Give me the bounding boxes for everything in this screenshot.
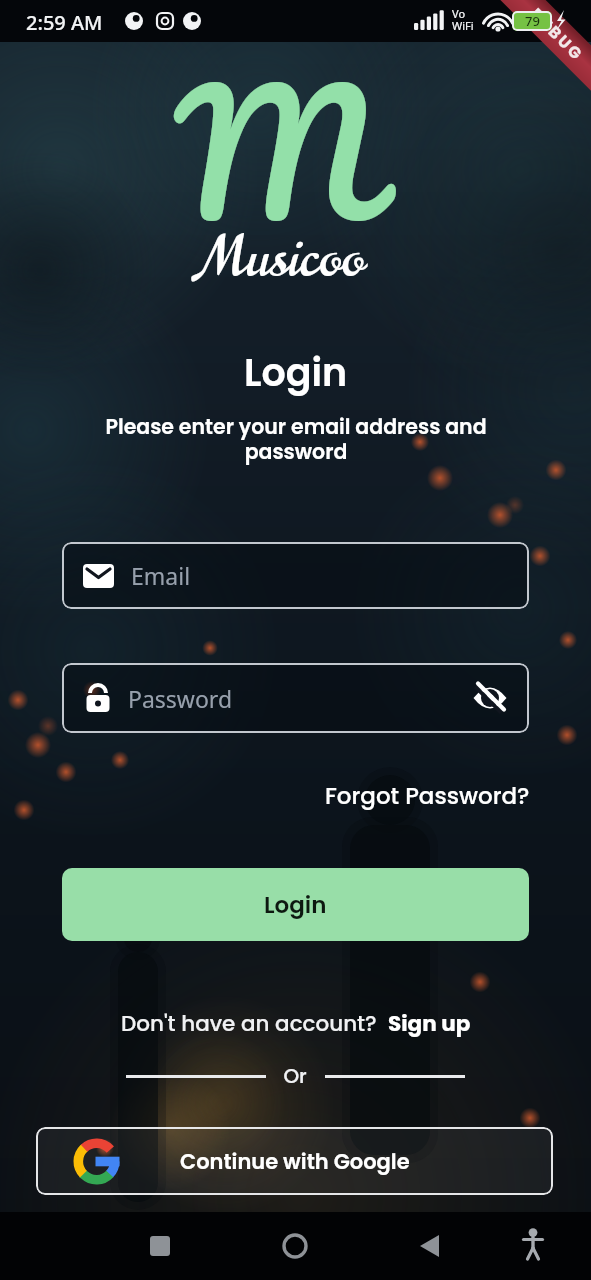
staticText: Or [273,1062,318,1090]
staticText: Login [244,346,348,399]
staticText: Vo WiFi [452,6,474,33]
button[interactable]: Don't have an account? [0,1008,591,1038]
button[interactable] [140,1226,180,1266]
staticText: DEBUG [526,3,589,66]
button[interactable] [473,682,509,714]
staticText: Password [128,683,473,714]
button[interactable] [410,1226,450,1266]
staticText: Don't have an account? [121,1008,388,1038]
button[interactable]: Continue with Google [36,1127,553,1195]
button[interactable] [513,1224,553,1264]
staticText: 2:59 AM [26,9,103,36]
staticText: 79 [525,12,540,30]
staticText: Sign up [388,1008,471,1038]
staticText: Login [264,889,327,921]
button[interactable] [275,1226,315,1266]
button[interactable]: Password [62,663,529,733]
staticText: Email [131,560,191,591]
staticText: Continue with Google [180,1147,410,1176]
button[interactable]: Forgot Password? [325,780,530,812]
button[interactable]: Email [62,542,529,609]
staticText: M [174,8,375,294]
button[interactable]: Login [62,868,529,941]
staticText: Musicoo [202,221,365,296]
staticText: Please enter your email address and pass… [105,412,487,466]
